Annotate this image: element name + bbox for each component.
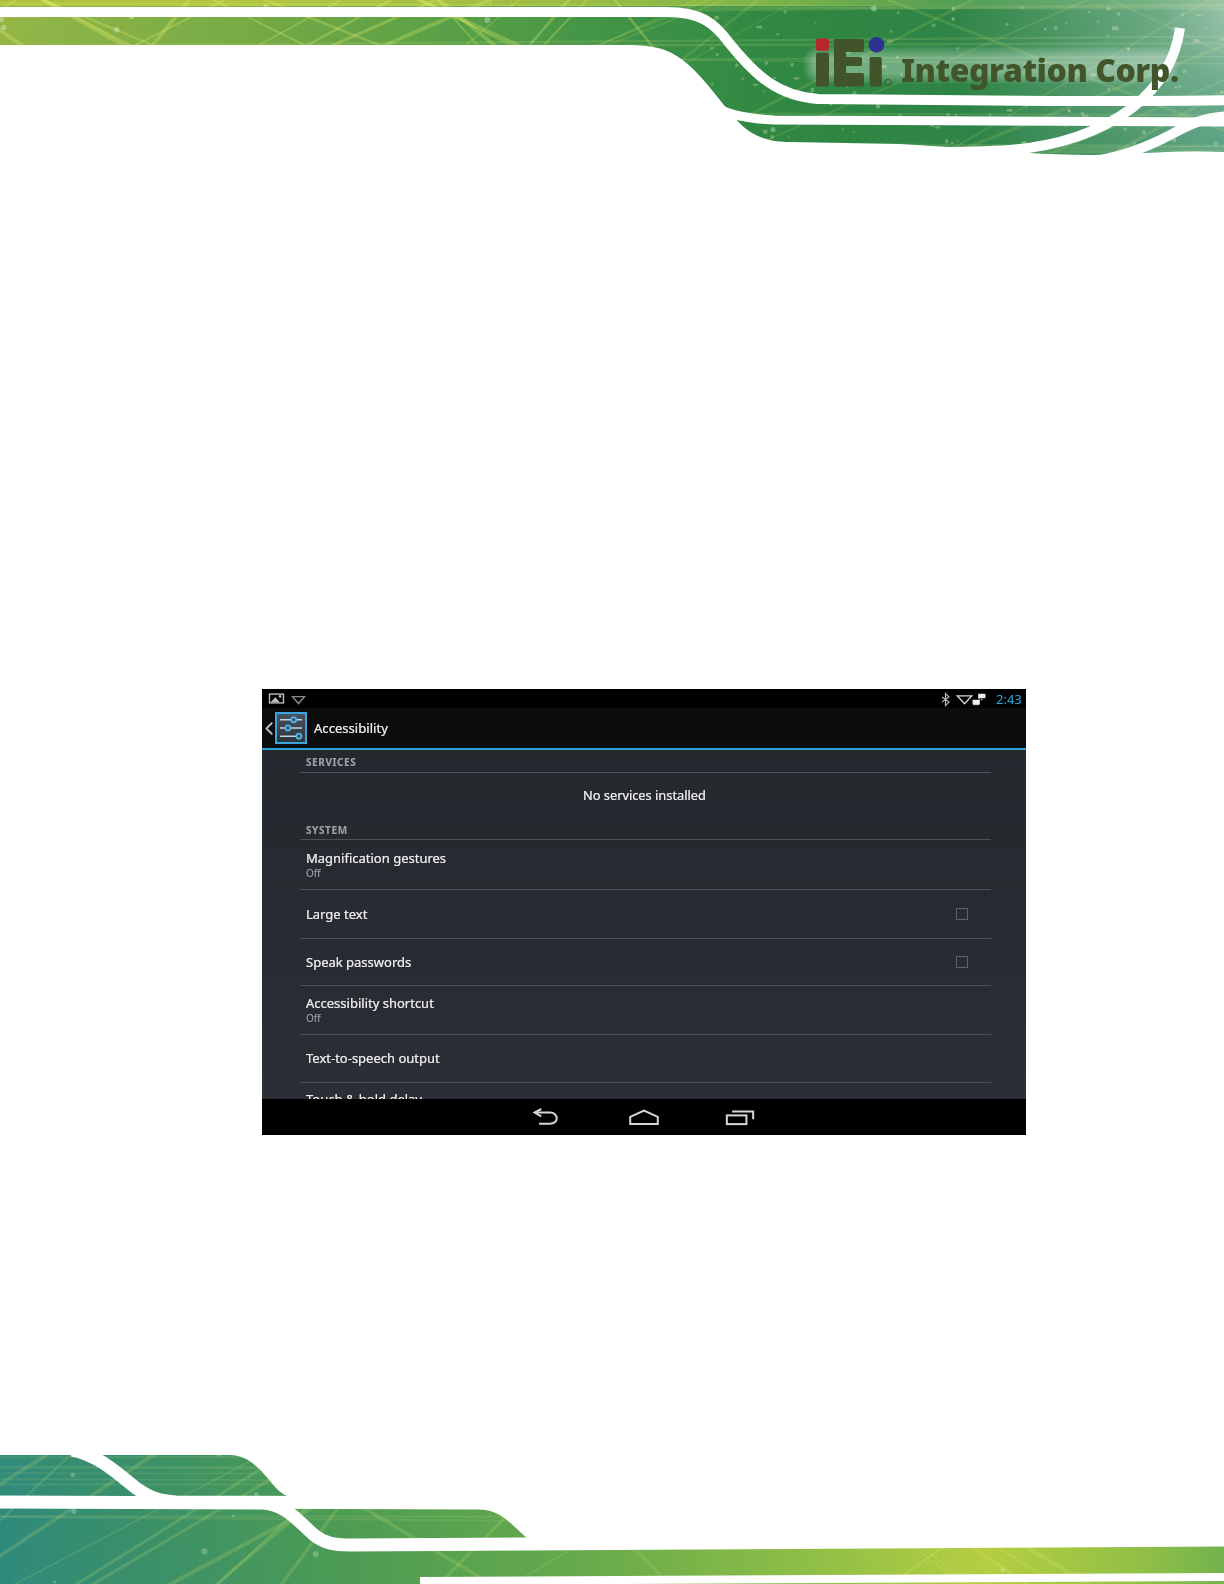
button[interactable]: Speak passwords	[262, 938, 1026, 986]
staticText: Magnification gestures	[306, 849, 447, 867]
staticText: Text-to-speech output	[306, 1049, 440, 1067]
staticText: Off	[306, 1011, 321, 1025]
button[interactable]: Accessibility shortcut	[262, 985, 1026, 1034]
staticText: SERVICES	[306, 755, 357, 769]
staticText: SYSTEM	[306, 823, 348, 837]
staticText: Touch & hold delay	[306, 1090, 422, 1108]
button[interactable]: Back	[517, 1099, 579, 1135]
staticText: Accessibility shortcut	[306, 994, 434, 1012]
button[interactable]: Large text	[262, 889, 1026, 938]
button[interactable]: Recent apps	[709, 1099, 771, 1135]
button[interactable]: Touch & hold delay	[262, 1078, 1026, 1108]
button[interactable]: Magnification gestures	[262, 839, 1026, 890]
staticText: 2:43	[996, 690, 1022, 708]
staticText: Large text	[306, 905, 368, 923]
button[interactable]: Text-to-speech output	[262, 1034, 1026, 1082]
staticText: Speak passwords	[306, 953, 412, 971]
button[interactable]: Accessibility, navigate up	[262, 708, 1026, 748]
button[interactable]: Home	[613, 1099, 675, 1135]
staticText: Off	[306, 866, 321, 880]
staticText: No services installed	[583, 786, 706, 803]
staticText: Integration Corp.	[901, 48, 1179, 92]
staticText: Accessibility	[314, 719, 388, 737]
